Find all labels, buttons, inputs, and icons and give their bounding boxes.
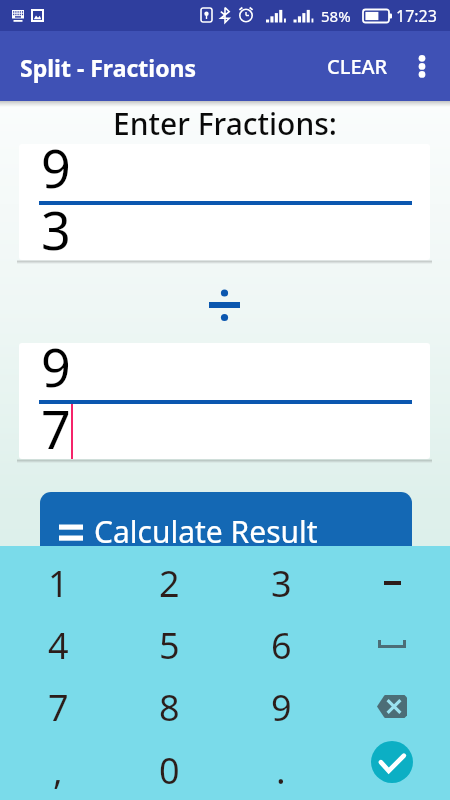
staticText: 9 bbox=[271, 683, 292, 732]
staticText: 7 bbox=[48, 683, 69, 732]
staticText: Split - Fractions bbox=[20, 52, 197, 83]
button[interactable]: 5 bbox=[113, 613, 225, 677]
button[interactable]: , bbox=[2, 738, 114, 800]
button[interactable]: 9 bbox=[19, 144, 430, 260]
button[interactable]: 6 bbox=[225, 613, 337, 677]
button[interactable]: Calculate Result bbox=[40, 492, 412, 570]
staticText: 8 bbox=[159, 683, 180, 732]
button[interactable]: 2 bbox=[113, 551, 225, 615]
button[interactable]: Space bbox=[337, 612, 447, 676]
staticText: , bbox=[53, 746, 63, 795]
staticText: 3 bbox=[271, 559, 292, 608]
staticText: 1 bbox=[48, 559, 69, 608]
button[interactable]: 3 bbox=[225, 551, 337, 615]
button[interactable]: CLEAR bbox=[309, 39, 406, 94]
staticText: 5 bbox=[159, 621, 180, 670]
button[interactable]: . bbox=[225, 738, 337, 800]
staticText: CLEAR bbox=[327, 53, 388, 80]
staticText: Calculate Result bbox=[94, 511, 318, 552]
staticText: 4 bbox=[48, 621, 69, 670]
staticText: 0 bbox=[159, 746, 180, 795]
staticText: 2 bbox=[159, 559, 180, 608]
button[interactable]: Confirm bbox=[337, 730, 447, 794]
button[interactable]: 4 bbox=[2, 613, 114, 677]
button[interactable]: More options bbox=[398, 42, 446, 90]
staticText: 17:23 bbox=[396, 5, 437, 27]
button[interactable]: 0 bbox=[113, 738, 225, 800]
button[interactable]: 9 bbox=[225, 675, 337, 739]
button[interactable]: Minus bbox=[337, 551, 447, 615]
staticText: Enter Fractions: bbox=[0, 103, 450, 144]
button[interactable]: 1 bbox=[2, 551, 114, 615]
button[interactable]: 8 bbox=[113, 675, 225, 739]
button[interactable]: 7 bbox=[2, 675, 114, 739]
staticText: 9 bbox=[41, 343, 71, 402]
staticText: 3 bbox=[41, 194, 71, 260]
staticText: 9 bbox=[41, 144, 71, 203]
staticText: 7 bbox=[41, 393, 71, 459]
staticText: 58% bbox=[321, 6, 351, 26]
button[interactable]: Backspace bbox=[337, 674, 447, 738]
button[interactable]: 9 bbox=[19, 343, 430, 459]
staticText: 6 bbox=[271, 621, 292, 670]
staticText: . bbox=[276, 746, 286, 795]
